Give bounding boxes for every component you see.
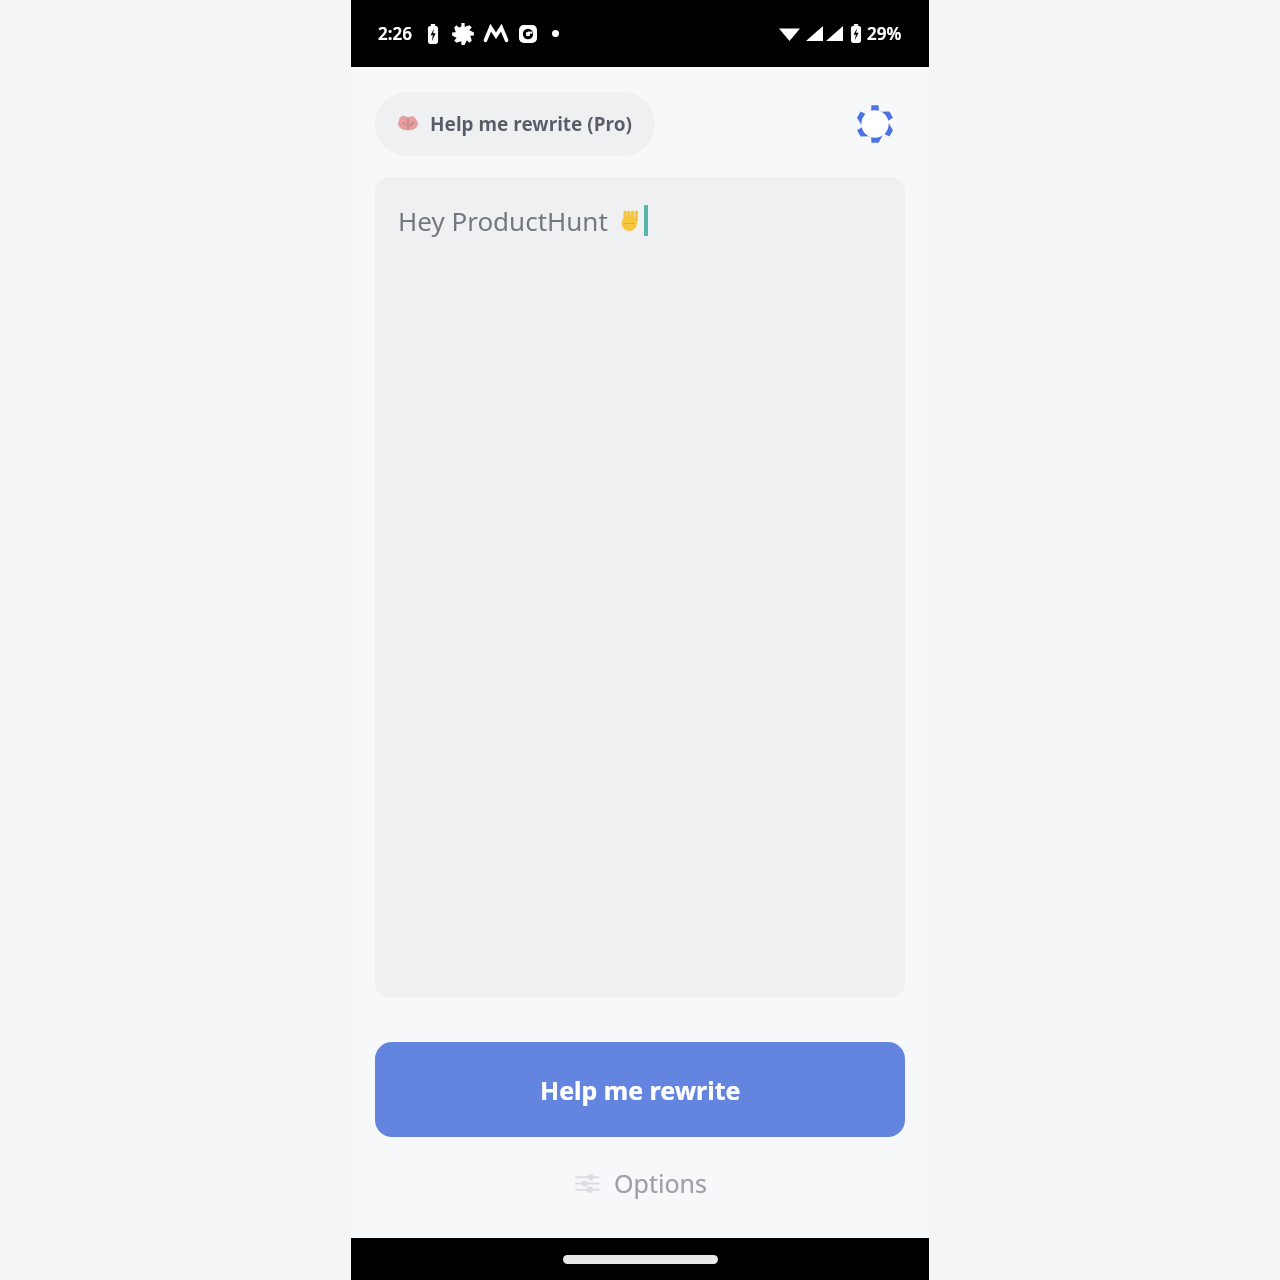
staticText: Help me rewrite <box>540 1073 741 1107</box>
button[interactable]: Help me rewrite (Pro) <box>375 92 655 156</box>
staticText: 29% <box>867 22 902 45</box>
button[interactable]: Options <box>556 1157 725 1209</box>
staticText: Hey ProductHunt <box>398 203 608 238</box>
staticText: Help me rewrite (Pro) <box>430 111 633 137</box>
staticText: 2:26 <box>378 22 412 45</box>
staticText: Options <box>614 1166 707 1200</box>
button[interactable]: Settings <box>845 94 905 154</box>
button[interactable]: Hey ProductHunt <box>375 177 905 998</box>
button[interactable]: Help me rewrite <box>375 1042 905 1137</box>
